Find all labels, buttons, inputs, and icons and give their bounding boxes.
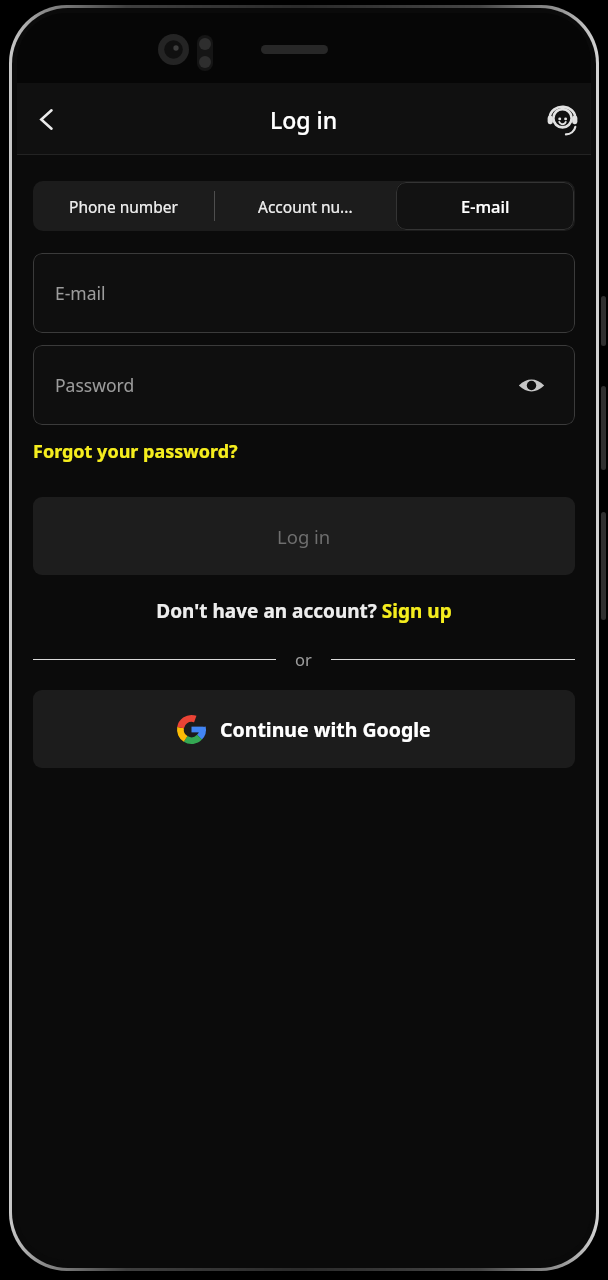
- staticText: Password: [55, 373, 135, 397]
- staticText: or: [295, 648, 312, 670]
- button[interactable]: Forgot your password?: [33, 436, 238, 467]
- button[interactable]: Log in: [33, 497, 575, 575]
- staticText: Continue with Google: [220, 716, 431, 743]
- staticText: Don't have an account? Sign up: [156, 598, 452, 624]
- staticText: Forgot your password?: [33, 439, 238, 464]
- staticText: Phone number: [69, 196, 179, 217]
- staticText: E-mail: [55, 281, 106, 305]
- button[interactable]: E-mail: [33, 253, 575, 333]
- button[interactable]: Back: [21, 94, 71, 144]
- button[interactable]: Phone number: [33, 181, 214, 231]
- button[interactable]: Continue with Google: [33, 690, 575, 768]
- button[interactable]: Customer support: [537, 94, 587, 144]
- button[interactable]: Show password: [509, 363, 553, 407]
- button[interactable]: E-mail: [396, 182, 574, 230]
- staticText: Account nu...: [258, 196, 353, 217]
- button[interactable]: Password: [33, 345, 575, 425]
- staticText: E-mail: [461, 195, 510, 217]
- button[interactable]: Don't have an account? Sign up: [33, 594, 575, 628]
- staticText: Log in: [270, 104, 338, 135]
- button[interactable]: Account nu...: [215, 181, 395, 231]
- staticText: Log in: [277, 524, 331, 549]
